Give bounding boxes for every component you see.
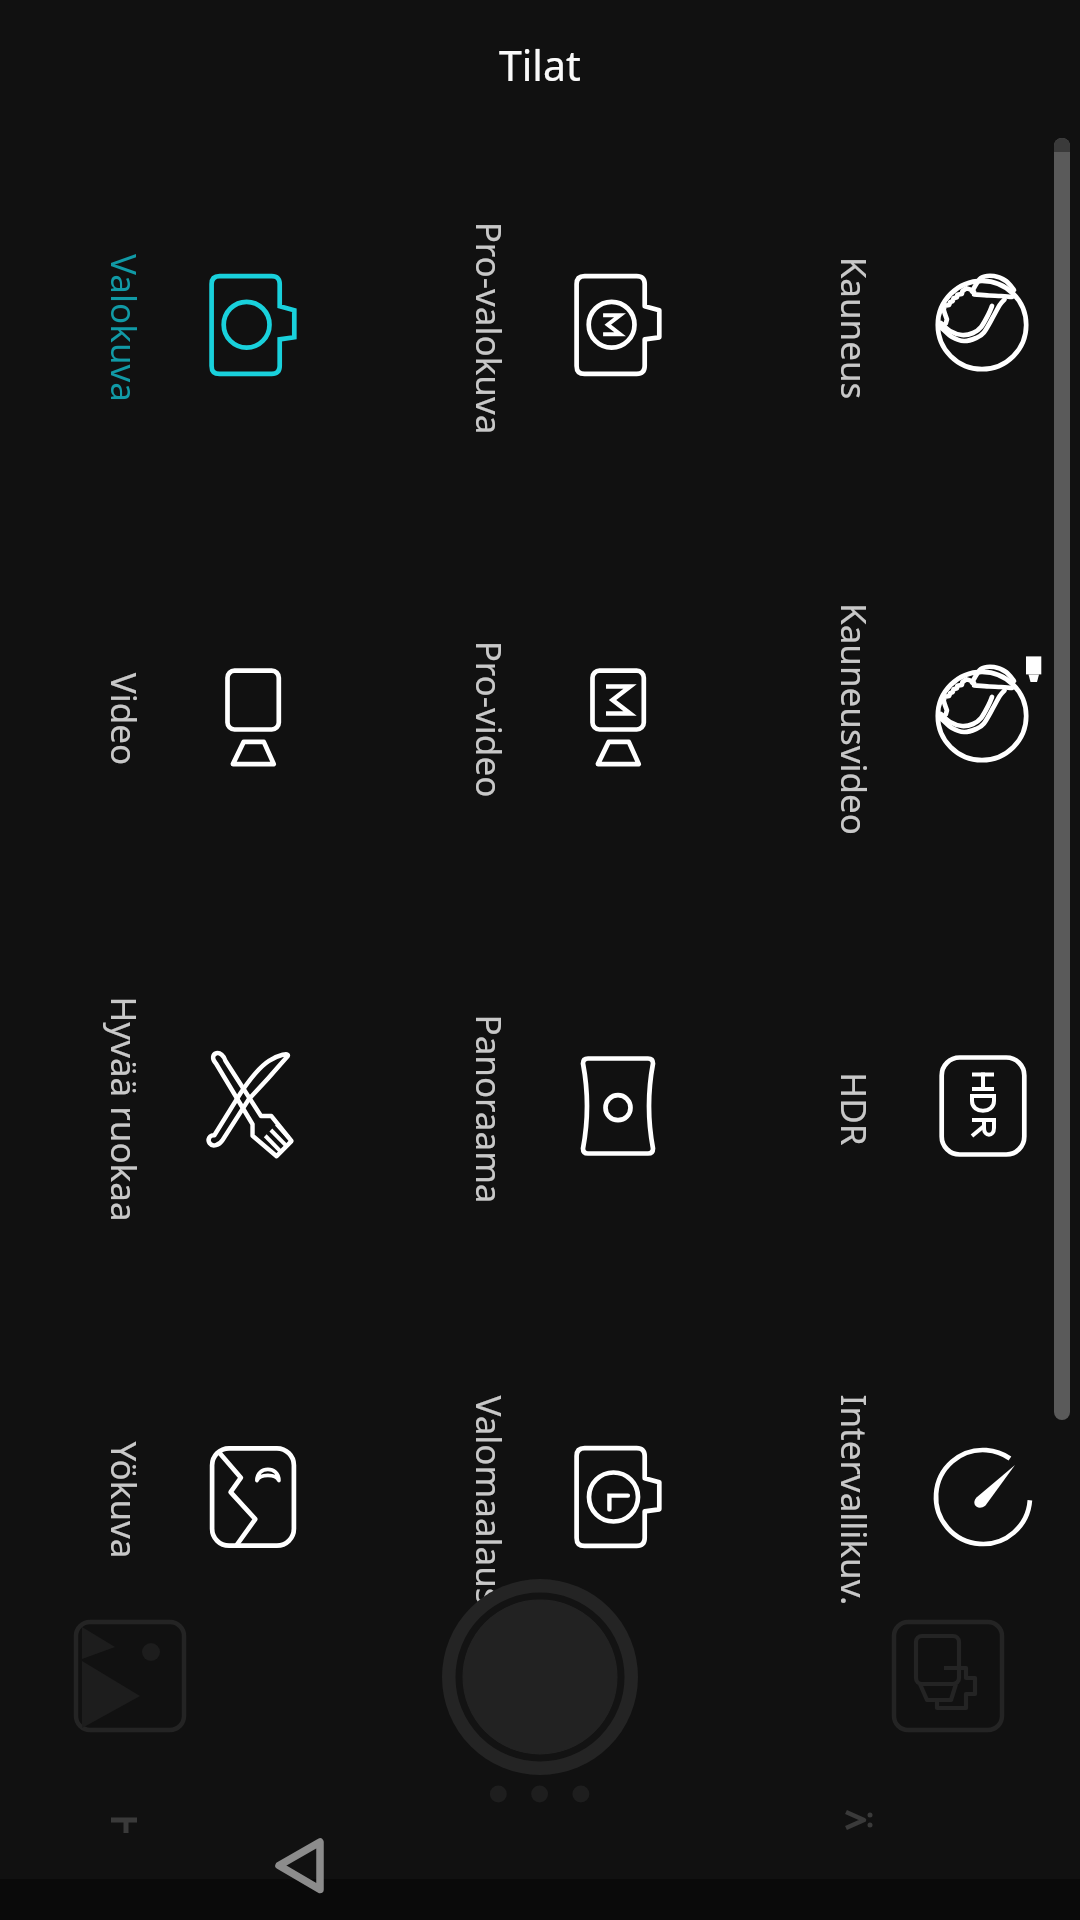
button[interactable]: Hyvää ruokaa bbox=[80, 936, 410, 1276]
button[interactable]: Shutter bbox=[442, 1579, 638, 1775]
button[interactable]: Kauneusvideo bbox=[810, 546, 1080, 886]
button[interactable]: Intervallikuv. bbox=[810, 1327, 1080, 1667]
staticText: Intervallikuv. bbox=[830, 1330, 878, 1670]
button[interactable]: Switch camera bbox=[891, 1619, 1005, 1733]
staticText: Tilat bbox=[499, 37, 581, 93]
staticText: Kauneus bbox=[830, 158, 878, 498]
staticText: Pro-video bbox=[465, 549, 513, 889]
button[interactable]: HDR bbox=[810, 936, 1080, 1276]
button[interactable]: Back bbox=[250, 1815, 360, 1920]
staticText: Kauneusvideo bbox=[830, 549, 878, 889]
button[interactable]: Pro-valokuva bbox=[445, 155, 775, 495]
button[interactable]: Kauneus bbox=[810, 155, 1080, 495]
staticText: Hyvää ruokaa bbox=[100, 939, 148, 1279]
staticText: Video bbox=[100, 549, 148, 889]
button[interactable]: Valokuva bbox=[80, 155, 410, 495]
button[interactable]: Gallery bbox=[73, 1619, 187, 1733]
button[interactable]: Panoraama bbox=[445, 936, 775, 1276]
button[interactable]: Video bbox=[80, 546, 410, 886]
staticText: HDR bbox=[830, 939, 878, 1279]
button[interactable]: Pro-video bbox=[445, 546, 775, 886]
staticText: Panoraama bbox=[465, 939, 513, 1279]
button[interactable]: Yökuva bbox=[80, 1327, 410, 1667]
button[interactable]: Valomaalaus bbox=[445, 1327, 775, 1667]
staticText: Yökuva bbox=[100, 1330, 148, 1670]
staticText: Valomaalaus bbox=[465, 1330, 513, 1670]
staticText: Pro-valokuva bbox=[465, 158, 513, 498]
staticText: Valokuva bbox=[100, 158, 148, 498]
